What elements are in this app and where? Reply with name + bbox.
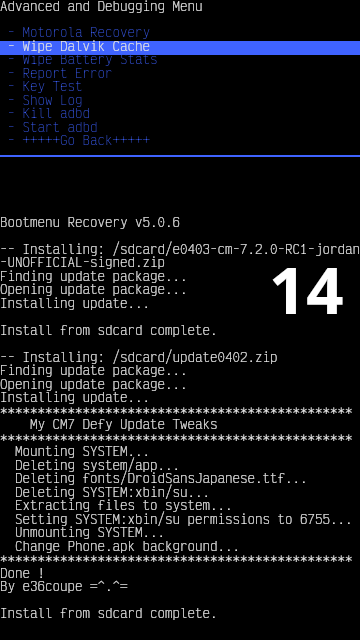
- staticText: - Kill adbd: [0, 104, 91, 121]
- staticText: Change Phone.apk background...: [0, 537, 241, 554]
- staticText: Installing update...: [0, 294, 151, 311]
- staticText: - Report Error: [0, 64, 113, 81]
- staticText: -UNOFFICIAL-signed.zip: [0, 253, 166, 270]
- button[interactable]: [0, 135, 360, 149]
- staticText: Install from sdcard complete.: [0, 321, 218, 338]
- button[interactable]: [0, 54, 360, 68]
- staticText: - +++++Go Back+++++: [0, 131, 151, 148]
- staticText: Finding update package...: [0, 361, 188, 378]
- staticText: Bootmenu Recovery v5.0.6: [0, 213, 181, 230]
- staticText: Setting SYSTEM:xbin/su permissions to 67…: [0, 510, 353, 527]
- button[interactable]: [0, 27, 360, 41]
- staticText: ****************************************…: [0, 550, 353, 567]
- button[interactable]: [0, 67, 360, 81]
- button[interactable]: [0, 94, 360, 108]
- staticText: - Show Log: [0, 91, 83, 108]
- button[interactable]: [0, 81, 360, 95]
- staticText: ****************************************…: [0, 402, 353, 419]
- staticText: Opening update package...: [0, 375, 188, 392]
- staticText: - Wipe Battery Stats: [0, 50, 158, 67]
- staticText: Mounting SYSTEM...: [0, 442, 151, 459]
- staticText: Done !: [0, 564, 46, 581]
- button[interactable]: [0, 121, 360, 135]
- staticText: Installing update...: [0, 388, 151, 405]
- button[interactable]: [0, 108, 360, 122]
- staticText: - Motorola Recovery: [0, 23, 151, 40]
- button[interactable]: [0, 41, 360, 55]
- staticText: Finding update package...: [0, 267, 188, 284]
- staticText: Install from sdcard complete.: [0, 604, 218, 621]
- staticText: Extracting files to system...: [0, 496, 233, 513]
- staticText: Deleting system/app...: [0, 456, 181, 473]
- staticText: -- Installing: /sdcard/update0402.zip: [0, 348, 278, 365]
- staticText: - Wipe Dalvik Cache: [0, 37, 151, 54]
- staticText: ****************************************…: [0, 429, 353, 446]
- staticText: Deleting fonts/DroidSansJapanese.ttf...: [0, 469, 308, 486]
- staticText: Unmounting SYSTEM...: [0, 523, 166, 540]
- staticText: Deleting SYSTEM:xbin/su...: [0, 483, 211, 500]
- staticText: Advanced and Debugging Menu: [0, 0, 203, 14]
- staticText: - Start adbd: [0, 118, 98, 135]
- staticText: My CM7 Defy Update Tweaks: [0, 415, 218, 432]
- staticText: 14: [269, 245, 344, 334]
- staticText: - Key Test: [0, 77, 83, 94]
- staticText: By e36coupe =^.^=: [0, 577, 128, 594]
- staticText: Opening update package...: [0, 280, 188, 297]
- staticText: -- Installing: /sdcard/e0403-cm-7.2.0-RC…: [0, 240, 360, 257]
